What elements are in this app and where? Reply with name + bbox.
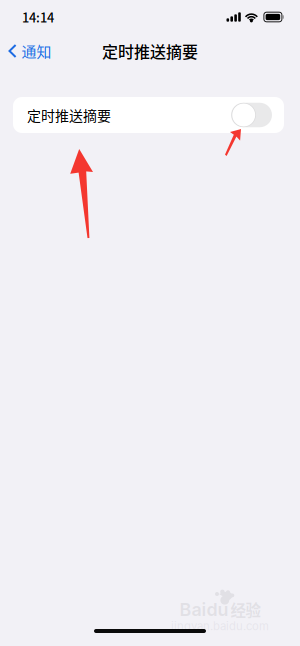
button[interactable]: 返回 通知 — [0, 33, 57, 69]
staticText: 通知 — [21, 40, 51, 62]
staticText: Baidu — [179, 599, 228, 620]
staticText: 经验 — [230, 598, 260, 621]
staticText: 定时推送摘要 — [27, 105, 111, 125]
staticText: 定时推送摘要 — [102, 39, 198, 63]
staticText: jingyan.baidu.com — [171, 619, 269, 633]
staticText: 14:14 — [22, 8, 54, 26]
button[interactable]: 定时推送摘要 — [13, 97, 284, 133]
